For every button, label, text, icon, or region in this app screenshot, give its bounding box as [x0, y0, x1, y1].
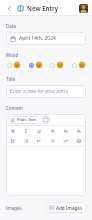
button[interactable]: Heading 3	[75, 127, 83, 135]
button[interactable]	[6, 61, 21, 69]
button[interactable]	[28, 61, 43, 69]
button[interactable]: Italic	[22, 127, 30, 135]
staticText: Date	[6, 23, 16, 29]
button[interactable]: Numbered list	[22, 137, 30, 145]
button[interactable]: April 14th, 2024	[6, 32, 86, 45]
button[interactable]: Underline	[35, 127, 43, 135]
button[interactable]	[49, 61, 64, 69]
button[interactable]: Code	[49, 137, 57, 145]
button[interactable]: Link	[62, 137, 70, 145]
button[interactable]: Back	[4, 3, 14, 13]
button[interactable]: Bullet list	[9, 137, 17, 145]
staticText: New Entry	[27, 4, 59, 12]
staticText: Title	[6, 76, 16, 82]
button[interactable]: Bold	[9, 127, 17, 135]
staticText: Images	[6, 205, 22, 211]
button[interactable]: New Entry	[17, 4, 59, 12]
staticText: April 14th, 2024	[19, 35, 56, 42]
staticText: Plain Text	[17, 117, 37, 123]
staticText: Mood	[6, 52, 19, 58]
button[interactable]: Add Images	[46, 202, 86, 213]
staticText: Add Images	[56, 205, 83, 211]
staticText: Enter a title for your entry	[10, 88, 69, 95]
button[interactable]: Heading 2	[62, 127, 70, 135]
button[interactable]: Heading 1	[49, 127, 57, 135]
button[interactable]: Profile	[79, 4, 88, 13]
button[interactable]: Preview	[42, 116, 50, 124]
staticText: Content	[6, 105, 23, 111]
button[interactable]: Image	[75, 137, 83, 145]
button[interactable]: Plain Text	[9, 116, 39, 124]
button[interactable]	[71, 61, 86, 69]
button[interactable]: Enter a title for your entry	[6, 85, 86, 98]
button[interactable]	[6, 147, 86, 196]
button[interactable]: Quote	[35, 137, 43, 145]
